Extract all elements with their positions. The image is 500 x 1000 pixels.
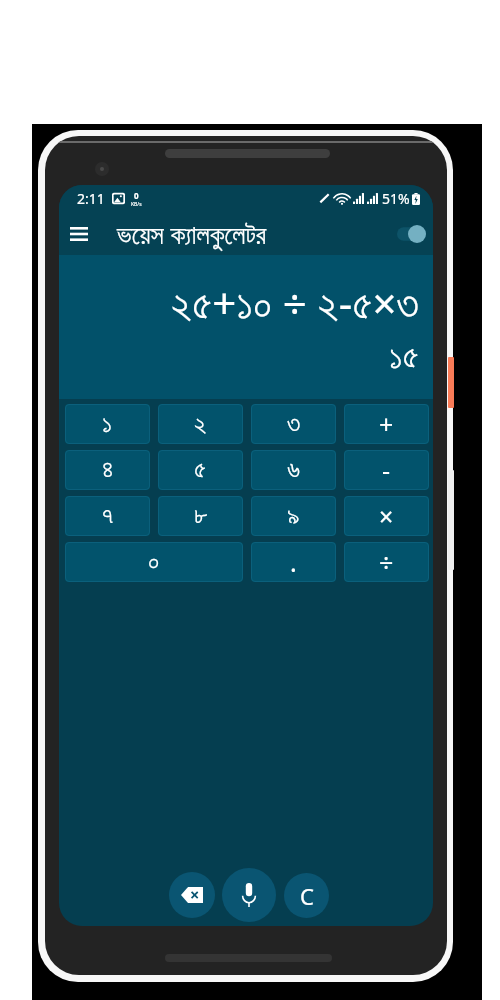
staticText: + [379,407,394,441]
button[interactable]: Voice input [222,868,276,922]
button[interactable]: Clear [284,873,329,918]
button[interactable]: ৪ [65,450,150,490]
staticText: × [379,499,394,533]
button[interactable]: Backspace [169,872,215,918]
button[interactable]: ২ [158,404,243,444]
staticText: C [300,881,314,911]
button[interactable]: + [344,404,429,444]
button[interactable]: × [344,496,429,536]
button[interactable]: ৭ [65,496,150,536]
button[interactable]: Toggle voice mode [389,212,433,255]
staticText: . [290,545,297,579]
staticText: KB/s [131,201,142,208]
staticText: 0 [134,190,139,201]
staticText: ৬ [287,458,301,483]
staticText: ৩ [287,412,301,437]
staticText: ০ [148,550,160,575]
staticText: ৮ [194,504,208,529]
staticText: ২ [194,412,207,437]
button[interactable]: Open navigation menu [59,212,99,255]
button[interactable]: ১ [65,404,150,444]
button[interactable]: ৮ [158,496,243,536]
button[interactable]: ÷ [344,542,429,582]
button[interactable]: ৬ [251,450,336,490]
staticText: ÷ [379,545,394,579]
button[interactable]: ৯ [251,496,336,536]
button[interactable]: ৩ [251,404,336,444]
staticText: ৯ [287,504,300,529]
button[interactable]: - [344,450,429,490]
staticText: - [382,453,391,487]
staticText: 51% [382,189,410,208]
staticText: ১ [102,412,113,437]
staticText: ৪ [102,458,114,483]
staticText: ২৫+১০ ÷ ২-৫×৩ [171,274,419,331]
staticText: ১৫ [389,341,419,375]
staticText: 2:11 [77,189,105,208]
staticText: ৭ [102,504,114,529]
button[interactable]: . [251,542,336,582]
staticText: ৫ [194,458,207,483]
button[interactable]: ৫ [158,450,243,490]
staticText: ভয়েস ক্যালকুলেটর [117,216,267,251]
button[interactable]: ০ [65,542,243,582]
